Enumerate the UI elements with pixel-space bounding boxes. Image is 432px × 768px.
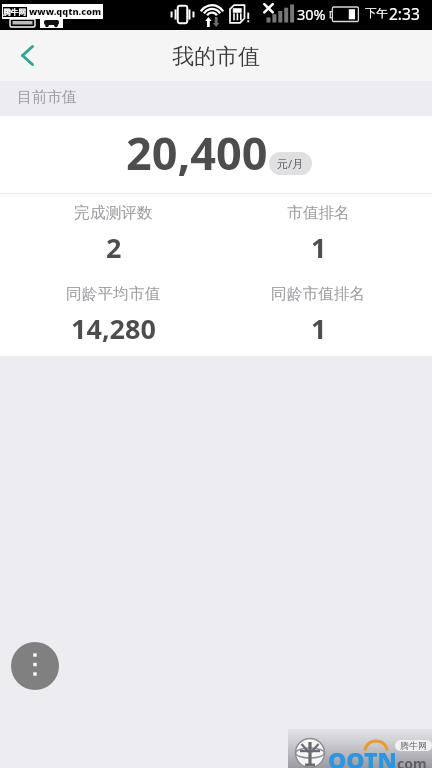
- button[interactable]: 完成测评数: [11, 194, 216, 275]
- staticText: 1: [311, 310, 327, 347]
- button[interactable]: 同龄市值排名: [216, 275, 421, 356]
- staticText: 腾牛网: [3, 7, 27, 17]
- staticText: QQTN: [328, 744, 397, 768]
- button[interactable]: More options: [11, 642, 59, 690]
- staticText: 30%: [297, 4, 326, 24]
- staticText: 同龄市值排名: [271, 284, 366, 304]
- staticText: www.qqtn.com: [29, 5, 102, 18]
- staticText: 20,400: [126, 122, 268, 183]
- staticText: 14,280: [71, 310, 156, 347]
- staticText: 2: [106, 229, 122, 266]
- button[interactable]: Back: [0, 30, 54, 81]
- staticText: com: [397, 754, 427, 768]
- staticText: 元/月: [277, 156, 304, 171]
- button[interactable]: 市值排名: [216, 194, 421, 275]
- staticText: 目前市值: [17, 88, 77, 107]
- staticText: 1: [311, 229, 327, 266]
- button[interactable]: 同龄平均市值: [11, 275, 216, 356]
- staticText: 我的市值: [172, 43, 260, 71]
- staticText: 下午: [365, 6, 388, 20]
- staticText: 腾牛网: [400, 740, 427, 751]
- staticText: 完成测评数: [74, 203, 153, 223]
- staticText: 2:33: [389, 3, 420, 24]
- staticText: 同龄平均市值: [66, 284, 161, 304]
- staticText: 市值排名: [287, 203, 350, 223]
